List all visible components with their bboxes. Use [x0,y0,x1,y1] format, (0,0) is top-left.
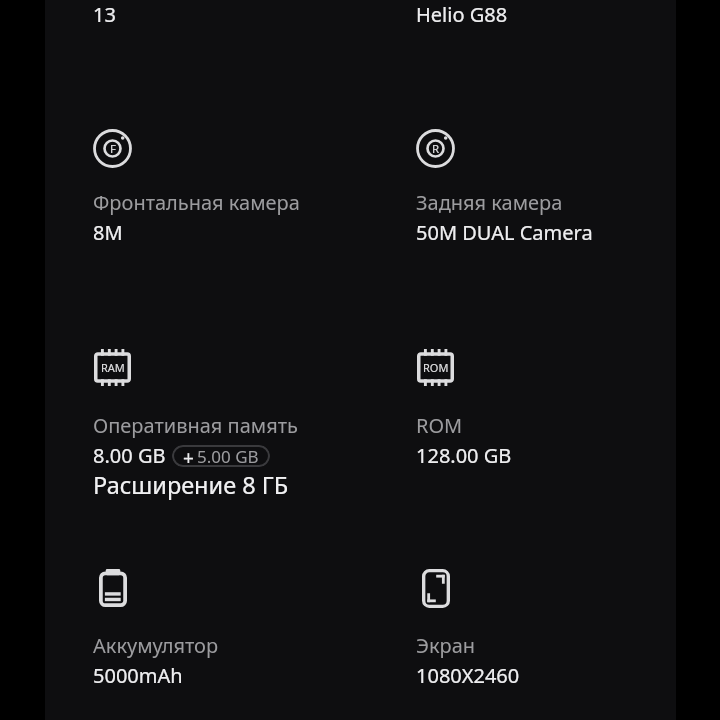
staticText: 13 [93,1,116,28]
other: ROM [416,347,455,388]
other: Front camera [93,125,132,171]
button[interactable]: Helio G88 [368,1,676,28]
staticText: 5000mAh [93,662,183,689]
button[interactable]: Battery [45,567,368,689]
other: RAM [93,347,132,388]
staticText: Helio G88 [416,1,508,28]
staticText: Аккумулятор [93,632,219,659]
other: Battery [93,567,132,609]
staticText: 1080X2460 [416,662,520,689]
staticText: R [432,141,440,157]
staticText: 5.00 GB [197,445,259,467]
button[interactable]: ROM [368,347,676,469]
staticText: 8M [93,219,123,246]
staticText: 128.00 GB [416,442,512,469]
staticText: 50M DUAL Camera [416,219,593,246]
staticText: F [110,141,116,157]
button[interactable]: Screen [368,567,676,689]
staticText: ROM [423,360,449,375]
button[interactable]: 13 [45,1,368,28]
staticText: Задняя камера [416,189,563,216]
button[interactable]: RAM [45,347,368,501]
button[interactable]: Rear camera [368,125,676,246]
staticText: RAM [101,360,125,375]
other: Screen [416,567,455,609]
other: Rear camera [416,125,455,171]
staticText: + [183,445,194,467]
staticText: 8.00 GB [93,442,166,469]
staticText: Экран [416,632,476,659]
staticText: ROM [416,412,463,439]
button[interactable]: Front camera [45,125,368,246]
staticText: Оперативная память [93,412,298,439]
staticText: Фронтальная камера [93,189,300,216]
staticText: Расширение 8 ГБ [93,469,289,501]
